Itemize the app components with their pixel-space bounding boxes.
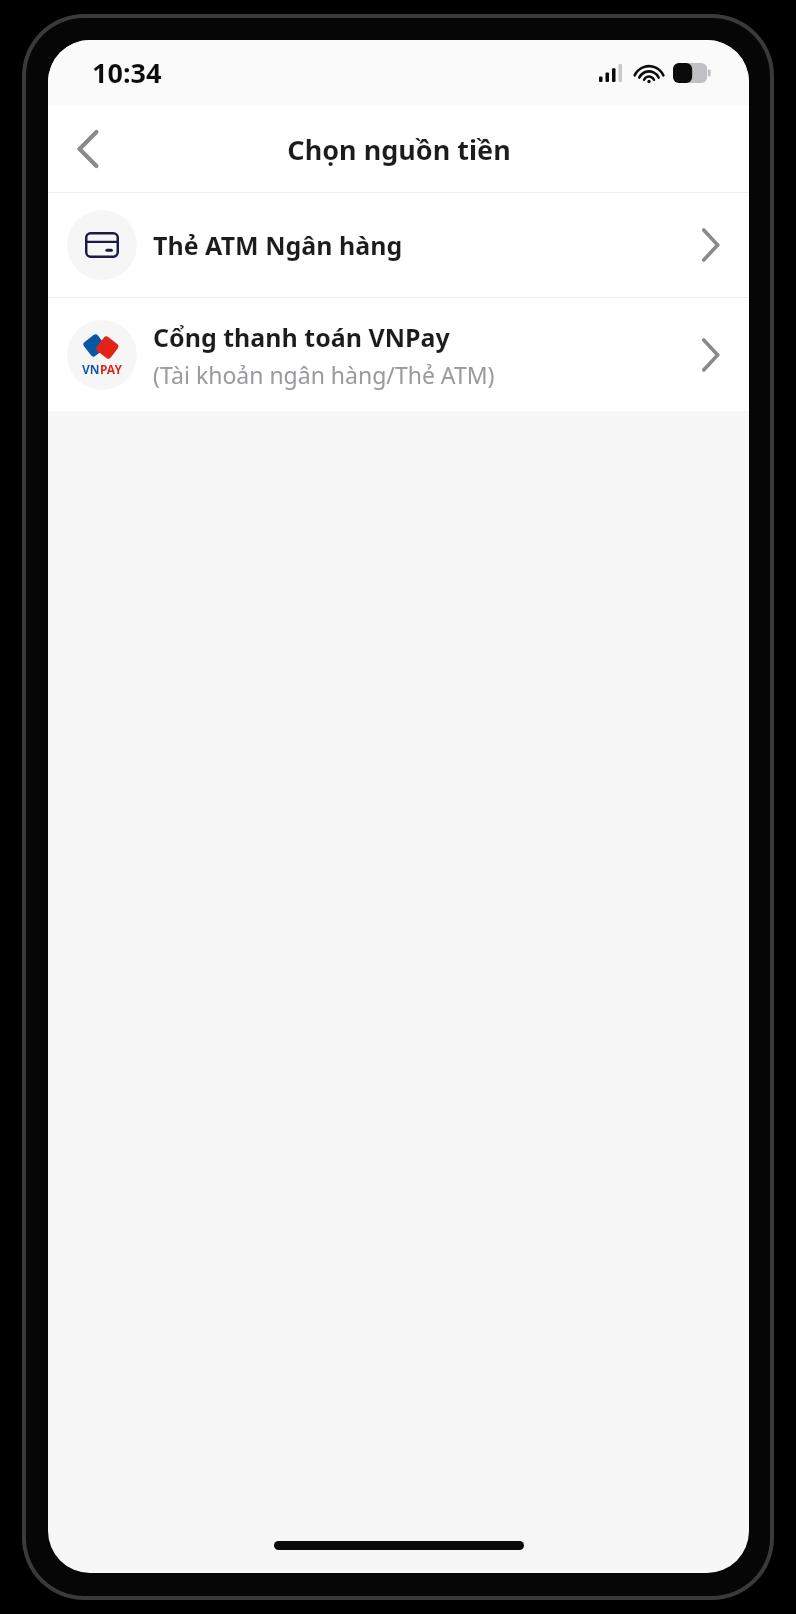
staticText: 10:34	[92, 54, 162, 91]
staticText: PAY	[100, 361, 122, 377]
staticText: VN	[82, 361, 100, 377]
button[interactable]: Back	[54, 115, 122, 183]
staticText: Cổng thanh toán VNPay	[153, 320, 450, 354]
staticText: Chọn nguồn tiền	[287, 131, 511, 168]
staticText: (Tài khoản ngân hàng/Thẻ ATM)	[153, 359, 495, 390]
button[interactable]: Thẻ ATM Ngân hàng	[48, 193, 749, 297]
staticText: Thẻ ATM Ngân hàng	[153, 228, 403, 262]
button[interactable]: VN	[48, 298, 749, 411]
